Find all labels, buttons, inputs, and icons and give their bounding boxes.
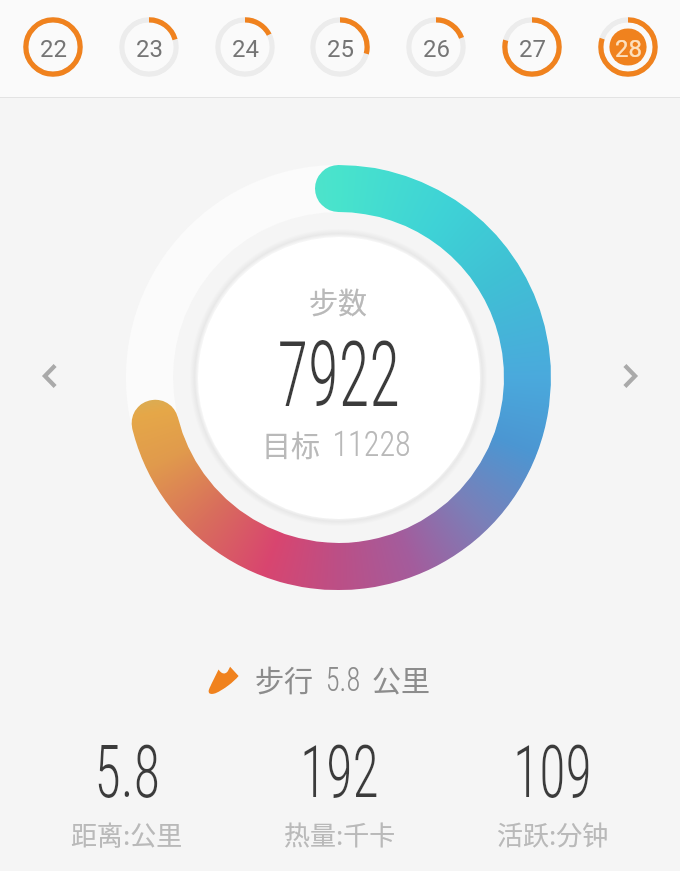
button[interactable]: Walking <box>208 658 431 700</box>
button[interactable]: 192 <box>233 729 446 853</box>
staticText: 109 <box>513 729 592 815</box>
button[interactable]: 23 <box>111 9 187 85</box>
other: Walking <box>208 662 242 696</box>
button[interactable]: Previous day <box>26 352 74 400</box>
staticText: 目标 <box>262 423 321 465</box>
staticText: 27 <box>519 35 546 63</box>
staticText: 23 <box>136 35 163 63</box>
button[interactable]: 26 <box>398 9 474 85</box>
staticText: 7922 <box>277 323 401 428</box>
staticText: 热量:千卡 <box>284 815 396 853</box>
staticText: 22 <box>40 35 67 63</box>
staticText: 公里 <box>372 658 431 700</box>
staticText: 192 <box>300 729 379 815</box>
button[interactable]: 27 <box>494 9 570 85</box>
button[interactable]: Next day <box>606 352 654 400</box>
button[interactable]: 28 <box>590 9 666 85</box>
staticText: 26 <box>423 35 450 63</box>
button[interactable]: 25 <box>302 9 378 85</box>
button[interactable]: 5.8 <box>21 729 233 853</box>
staticText: 步行 <box>255 658 314 700</box>
staticText: 11228 <box>332 424 411 465</box>
staticText: 24 <box>232 35 259 63</box>
staticText: 5.8 <box>95 729 160 815</box>
staticText: 活跃:分钟 <box>497 815 609 853</box>
staticText: 25 <box>327 35 354 63</box>
staticText: 步数 <box>309 280 368 322</box>
button[interactable]: 24 <box>207 9 283 85</box>
staticText: 28 <box>615 35 642 63</box>
staticText: 5.8 <box>326 660 360 699</box>
button[interactable]: 22 <box>15 9 91 85</box>
staticText: 距离:公里 <box>71 815 183 853</box>
button[interactable]: 109 <box>446 729 659 853</box>
